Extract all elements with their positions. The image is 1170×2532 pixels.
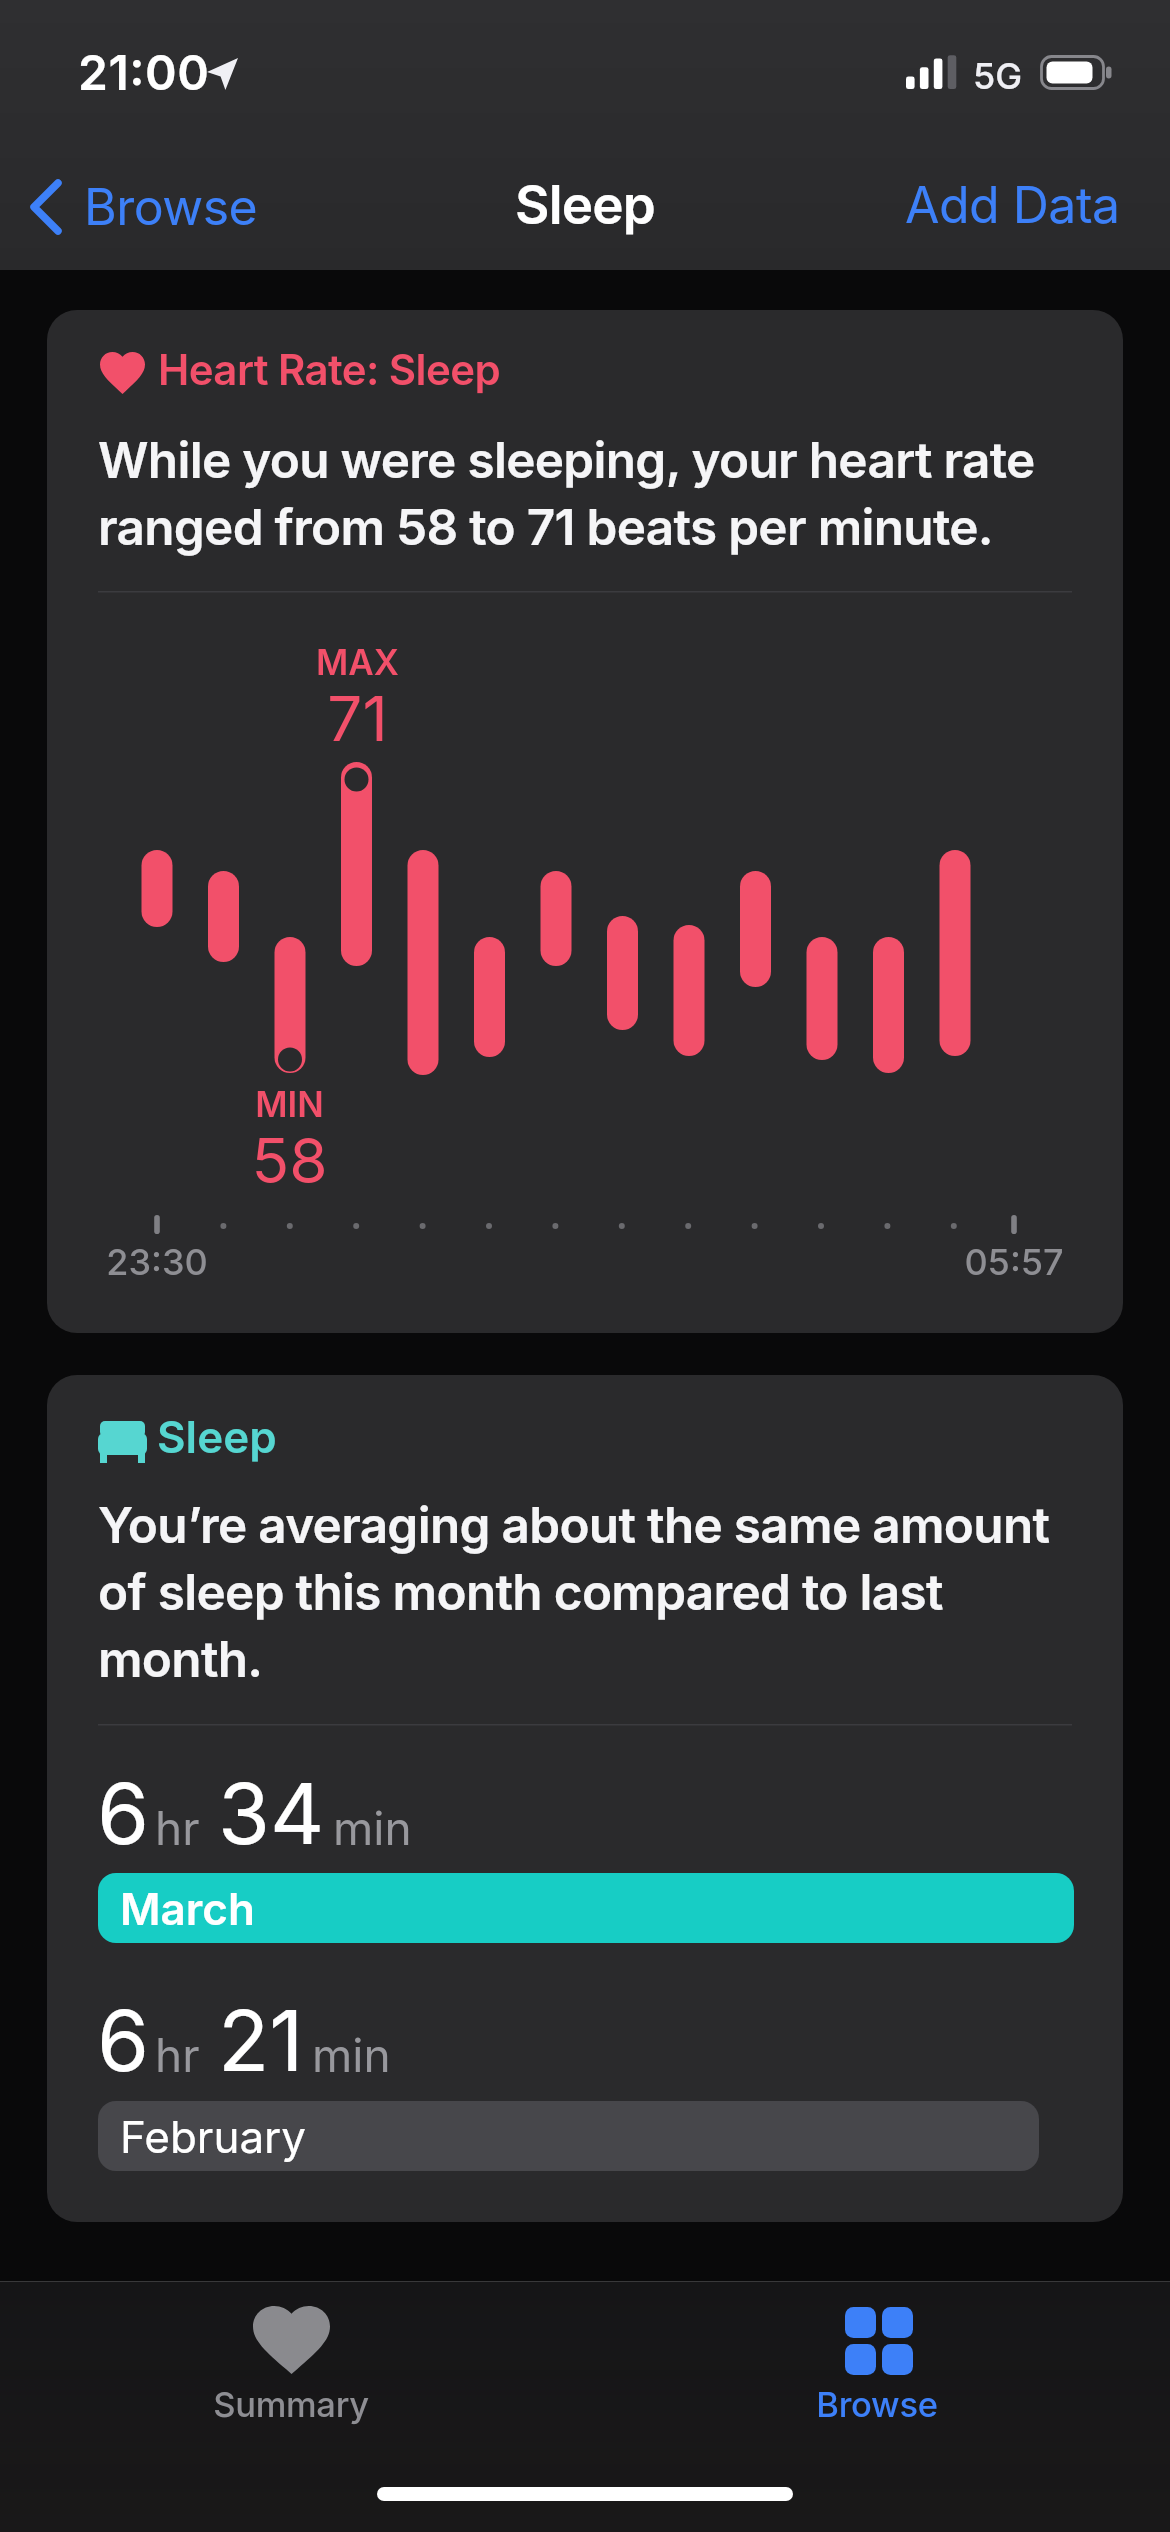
button[interactable]: March xyxy=(98,1873,1074,1943)
staticText: You’re averaging about the same amount o… xyxy=(98,1495,1050,1689)
staticText: 71 xyxy=(327,681,388,756)
button[interactable]: Browse xyxy=(20,172,270,247)
staticText: 21:00 xyxy=(78,43,210,101)
staticText: 34 xyxy=(218,1763,325,1865)
staticText: 6 xyxy=(97,1990,150,2092)
staticText: min xyxy=(312,2027,391,2083)
button[interactable]: February xyxy=(98,2101,1039,2171)
staticText: While you were sleeping, your heart rate… xyxy=(98,430,1035,557)
button[interactable]: Add Data xyxy=(905,175,1120,235)
staticText: Sleep xyxy=(515,173,656,237)
staticText: 21 xyxy=(218,1990,304,2092)
staticText: 05:57 xyxy=(964,1240,1064,1284)
button[interactable]: Summary xyxy=(181,2292,401,2437)
staticText: min xyxy=(333,1800,412,1856)
staticText: 23:30 xyxy=(106,1240,208,1284)
staticText: hr xyxy=(155,2027,200,2083)
staticText: MIN xyxy=(255,1083,324,1125)
staticText: Browse xyxy=(816,2384,938,2426)
staticText: hr xyxy=(155,1800,200,1856)
staticText: 5G xyxy=(973,54,1023,98)
staticText: Browse xyxy=(84,177,258,237)
staticText: Sleep xyxy=(157,1410,277,1463)
staticText: Heart Rate: Sleep xyxy=(158,344,501,395)
staticText: MAX xyxy=(316,641,399,683)
button[interactable]: Sleep xyxy=(47,1375,1123,2222)
button[interactable]: Heart Rate: Sleep xyxy=(47,310,1123,1333)
staticText: Summary xyxy=(213,2384,369,2426)
staticText: 6 xyxy=(97,1763,150,1865)
staticText: 58 xyxy=(251,1123,328,1198)
staticText: March xyxy=(120,1882,255,1935)
button[interactable]: Browse xyxy=(767,2292,987,2437)
staticText: February xyxy=(120,2110,307,2163)
